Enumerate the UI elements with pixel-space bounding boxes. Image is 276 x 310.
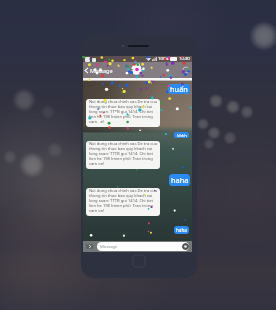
button[interactable]: huấn — [168, 84, 190, 94]
staticText: Seen 10:30 — [172, 234, 190, 239]
staticText: thong tin thue bao quy khach vui — [89, 193, 153, 199]
button[interactable]: Noi dung chua chinh xac.De tra cuu — [86, 99, 160, 127]
staticText: cam on! — [89, 161, 105, 167]
staticText: thong tin thue bao quy khach vui — [89, 146, 153, 152]
staticText: Message — [100, 244, 118, 250]
button[interactable]: Send voice message — [182, 243, 189, 250]
staticText: huấn — [170, 84, 188, 94]
button[interactable]: More options — [183, 67, 189, 73]
button[interactable]: haha — [174, 226, 189, 234]
staticText: lien he 198 (mien phi). Tran trong — [89, 203, 153, 209]
staticText: long soan: TTTB gui 1414. Chi tiet — [89, 151, 154, 157]
button[interactable]: hhhh — [174, 132, 189, 138]
button[interactable]: Message — [97, 242, 189, 251]
staticText: Message — [90, 67, 113, 74]
staticText: 10:30 — [179, 56, 190, 62]
button[interactable]: Home — [133, 255, 145, 267]
button[interactable]: Noi dung chua chinh xac.De tra cuu — [86, 188, 160, 216]
button[interactable]: Show more — [86, 244, 93, 249]
staticText: Noi dung chua chinh xac.De tra cuu — [89, 99, 158, 105]
staticText: cam on! — [89, 119, 105, 125]
staticText: lien he 198 (mien phi). Tran trong — [89, 156, 153, 162]
staticText: hhhh — [177, 133, 187, 138]
button[interactable]: Message — [83, 66, 117, 75]
staticText: thong tin thue bao quy khach vui — [89, 104, 153, 110]
staticText: lien he 198 (mien phi). Tran trong — [89, 114, 153, 120]
staticText: 100% — [158, 56, 169, 62]
staticText: Noi dung chua chinh xac.De tra cuu — [89, 141, 158, 147]
staticText: cam on! — [89, 208, 105, 214]
staticText: haha — [171, 175, 189, 185]
staticText: haha — [176, 227, 187, 233]
staticText: long soan: TTTB gui 1414. Chi tiet — [89, 109, 154, 115]
staticText: long soan: TTTB gui 1414. Chi tiet — [89, 198, 154, 204]
staticText: Noi dung chua chinh xac.De tra cuu — [89, 188, 158, 194]
button[interactable]: haha — [169, 174, 190, 186]
button[interactable]: Noi dung chua chinh xac.De tra cuu — [86, 141, 160, 169]
